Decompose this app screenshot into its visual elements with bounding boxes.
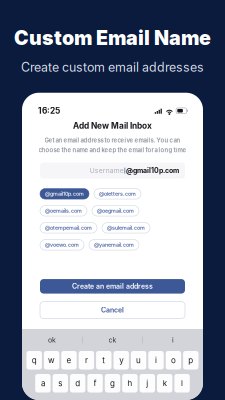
staticText: Cancel bbox=[101, 306, 124, 314]
staticText: u bbox=[136, 355, 141, 365]
button[interactable]: p bbox=[183, 351, 198, 369]
staticText: @gmail10p.com bbox=[45, 191, 84, 197]
button[interactable]: @otempemail.com bbox=[40, 223, 97, 233]
button[interactable]: o bbox=[166, 351, 181, 369]
staticText: Add New Mail Inbox bbox=[73, 121, 152, 131]
button[interactable]: a bbox=[35, 374, 51, 392]
staticText: p bbox=[188, 355, 193, 365]
staticText: g bbox=[110, 378, 115, 388]
button[interactable]: y bbox=[113, 351, 129, 369]
staticText: Username bbox=[90, 166, 124, 175]
button[interactable]: t bbox=[96, 351, 111, 369]
staticText: @oemails.com bbox=[45, 208, 82, 214]
staticText: Create custom email addresses bbox=[21, 60, 204, 75]
staticText: r bbox=[85, 355, 88, 365]
button[interactable]: @oletters.com bbox=[94, 189, 141, 199]
button[interactable]: Cancel bbox=[40, 302, 185, 319]
button[interactable]: l bbox=[174, 374, 190, 392]
staticText: @voewo.com bbox=[45, 242, 79, 248]
button[interactable]: h bbox=[122, 374, 138, 392]
staticText: choose the name and keep the email for a… bbox=[38, 146, 186, 154]
staticText: i bbox=[172, 336, 174, 344]
button[interactable]: g bbox=[105, 374, 120, 392]
button[interactable]: @yanemail.com bbox=[89, 240, 139, 250]
button[interactable]: f bbox=[87, 374, 103, 392]
staticText: @gmail10p.com bbox=[126, 166, 179, 175]
staticText: f bbox=[94, 378, 97, 388]
button[interactable]: d bbox=[70, 374, 85, 392]
button[interactable]: w bbox=[44, 351, 59, 369]
staticText: @yanemail.com bbox=[94, 242, 134, 248]
staticText: 16:25 bbox=[38, 106, 60, 116]
staticText: @oegmail.com bbox=[97, 208, 134, 214]
staticText: j bbox=[146, 378, 148, 388]
button[interactable]: k bbox=[157, 374, 172, 392]
staticText: Create an email address bbox=[72, 282, 153, 290]
button[interactable]: j bbox=[140, 374, 155, 392]
staticText: l bbox=[181, 378, 183, 388]
button[interactable]: @oemails.com bbox=[40, 206, 87, 216]
staticText: w bbox=[48, 355, 55, 365]
button[interactable]: u bbox=[131, 351, 146, 369]
staticText: q bbox=[32, 355, 37, 365]
button[interactable]: Create an email address bbox=[40, 279, 185, 294]
button[interactable]: i bbox=[148, 351, 164, 369]
staticText: i bbox=[155, 355, 157, 365]
button[interactable]: r bbox=[79, 351, 94, 369]
staticText: k bbox=[163, 378, 167, 388]
staticText: Get an email address to receive emails. … bbox=[44, 137, 180, 144]
staticText: y bbox=[119, 355, 123, 365]
button[interactable]: e bbox=[61, 351, 77, 369]
staticText: a bbox=[41, 378, 45, 388]
staticText: @sulemail.com bbox=[107, 225, 145, 231]
button[interactable]: @gmail10p.com bbox=[40, 189, 89, 199]
staticText: t bbox=[102, 355, 105, 365]
staticText: d bbox=[75, 378, 80, 388]
button[interactable]: @voewo.com bbox=[40, 240, 84, 250]
staticText: @otempemail.com bbox=[45, 225, 92, 231]
staticText: @oletters.com bbox=[99, 191, 136, 197]
button[interactable]: q bbox=[26, 351, 42, 369]
staticText: ok bbox=[48, 336, 56, 344]
button[interactable]: s bbox=[53, 374, 68, 392]
staticText: o bbox=[171, 355, 176, 365]
staticText: Custom Email Name bbox=[14, 26, 211, 50]
staticText: ck bbox=[108, 336, 116, 344]
staticText: e bbox=[66, 355, 71, 365]
staticText: h bbox=[127, 378, 132, 388]
button[interactable]: @sulemail.com bbox=[102, 223, 150, 233]
staticText: s bbox=[58, 378, 62, 388]
button[interactable]: @oegmail.com bbox=[92, 206, 139, 216]
